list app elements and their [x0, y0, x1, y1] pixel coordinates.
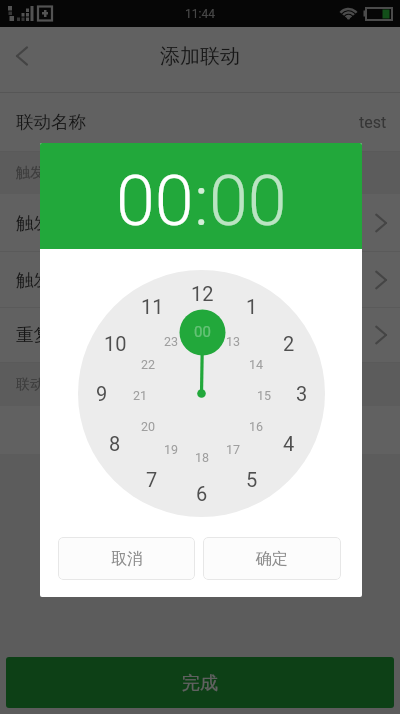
staticText: 1 — [246, 295, 258, 318]
staticText: 触发条件 — [16, 269, 86, 291]
staticText: 00 — [116, 160, 194, 242]
staticText: 16 — [249, 419, 264, 434]
staticText: 联动名称 — [16, 111, 86, 133]
button[interactable]: 确定 — [203, 537, 341, 580]
button[interactable]: 取消 — [58, 537, 195, 580]
staticText: 6 — [196, 482, 208, 505]
staticText: 联动动作 — [16, 376, 72, 394]
staticText: 7 — [146, 468, 158, 491]
staticText: 5 — [246, 468, 258, 491]
staticText: test — [359, 113, 387, 132]
staticText: 2 — [283, 332, 295, 355]
staticText: 3 — [296, 382, 308, 405]
staticText: 13 — [226, 334, 241, 349]
button[interactable]: 联动名称 — [0, 93, 400, 151]
staticText: 触发条件 — [16, 164, 72, 182]
staticText: 取消 — [111, 549, 143, 569]
staticText: 触发设备 — [16, 212, 86, 234]
staticText: 14 — [249, 357, 264, 372]
button[interactable]: 触发设备 — [0, 194, 400, 251]
staticText: 23 — [164, 334, 179, 349]
staticText: 完成 — [182, 672, 218, 695]
staticText: 20 — [141, 419, 156, 434]
staticText: : — [194, 160, 209, 242]
staticText: 21 — [133, 388, 148, 403]
staticText: 18 — [195, 450, 210, 465]
staticText: 12 — [191, 282, 214, 305]
staticText: 确定 — [256, 549, 288, 569]
staticText: 9 — [96, 382, 108, 405]
staticText: 00 — [209, 160, 287, 242]
staticText: 11 — [141, 295, 164, 318]
staticText: 22 — [141, 357, 156, 372]
button[interactable]: 触发条件 — [0, 252, 400, 307]
staticText: 17 — [226, 442, 241, 457]
staticText: 00 — [194, 323, 211, 341]
staticText: 10 — [104, 332, 127, 355]
staticText: 19 — [164, 442, 179, 457]
staticText: 15 — [257, 388, 272, 403]
staticText: 11:44 — [185, 7, 215, 21]
staticText: 4 — [283, 432, 295, 455]
staticText: 8 — [109, 432, 121, 455]
button[interactable]: 完成 — [6, 657, 394, 708]
button[interactable]: Back — [0, 34, 44, 78]
button[interactable]: 重复 — [0, 308, 400, 362]
staticText: 重复 — [16, 324, 51, 346]
staticText: 添加联动 — [160, 44, 240, 69]
